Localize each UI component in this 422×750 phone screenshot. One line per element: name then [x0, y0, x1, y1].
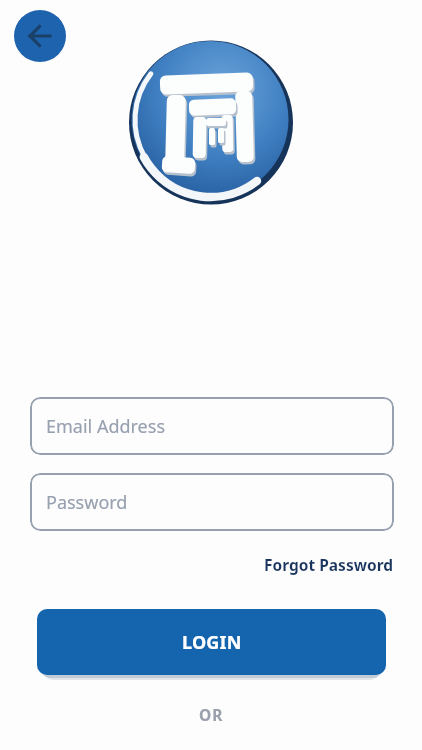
button[interactable]: Email Address — [30, 397, 394, 455]
button[interactable]: LOGIN — [37, 609, 386, 675]
staticText: LOGIN — [182, 630, 242, 655]
staticText: Email Address — [46, 414, 166, 439]
button[interactable]: Password — [30, 473, 394, 531]
staticText: OR — [199, 704, 224, 725]
button[interactable] — [14, 10, 66, 62]
staticText: Password — [46, 490, 128, 515]
button[interactable]: Forgot Password — [264, 554, 394, 575]
